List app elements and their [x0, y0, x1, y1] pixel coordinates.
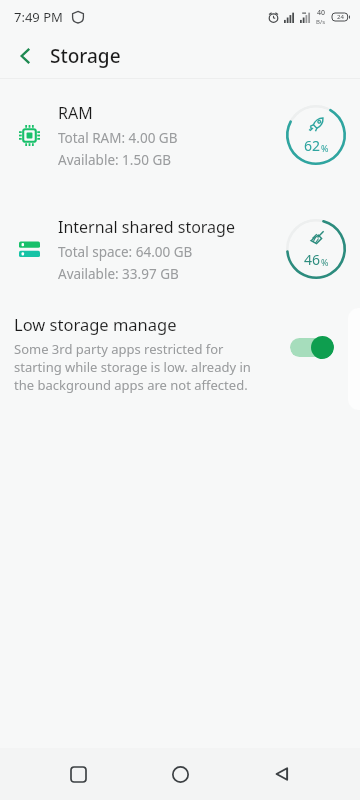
staticText: Available: 33.97 GB: [58, 265, 179, 283]
staticText: starting while storage is low. already i…: [14, 358, 251, 376]
button[interactable]: RAM: [0, 87, 360, 183]
staticText: Storage: [50, 43, 121, 69]
staticText: Total RAM: 4.00 GB: [58, 129, 178, 147]
staticText: Total space: 64.00 GB: [58, 243, 193, 261]
staticText: %: [321, 256, 329, 268]
staticText: %: [321, 142, 329, 154]
staticText: 24: [337, 13, 344, 21]
button[interactable]: Back: [6, 36, 46, 76]
button[interactable]: Back: [258, 750, 306, 798]
staticText: 46: [304, 250, 321, 269]
staticText: the background apps are not affected.: [14, 376, 248, 394]
button[interactable]: Low storage manage toggle: [290, 335, 334, 359]
button[interactable]: Internal shared storage: [0, 201, 360, 297]
staticText: 7:49 PM: [14, 8, 63, 26]
staticText: B/s: [316, 18, 326, 26]
staticText: 62: [304, 136, 321, 155]
staticText: Low storage manage: [14, 313, 177, 335]
staticText: Internal shared storage: [58, 216, 235, 238]
staticText: RAM: [58, 102, 93, 124]
staticText: Available: 1.50 GB: [58, 151, 172, 169]
staticText: 40: [317, 8, 326, 18]
button[interactable]: Recent apps: [54, 750, 102, 798]
button[interactable]: Low storage manage: [0, 311, 360, 402]
button[interactable]: Home: [156, 750, 204, 798]
staticText: Some 3rd party apps restricted for: [14, 340, 224, 358]
